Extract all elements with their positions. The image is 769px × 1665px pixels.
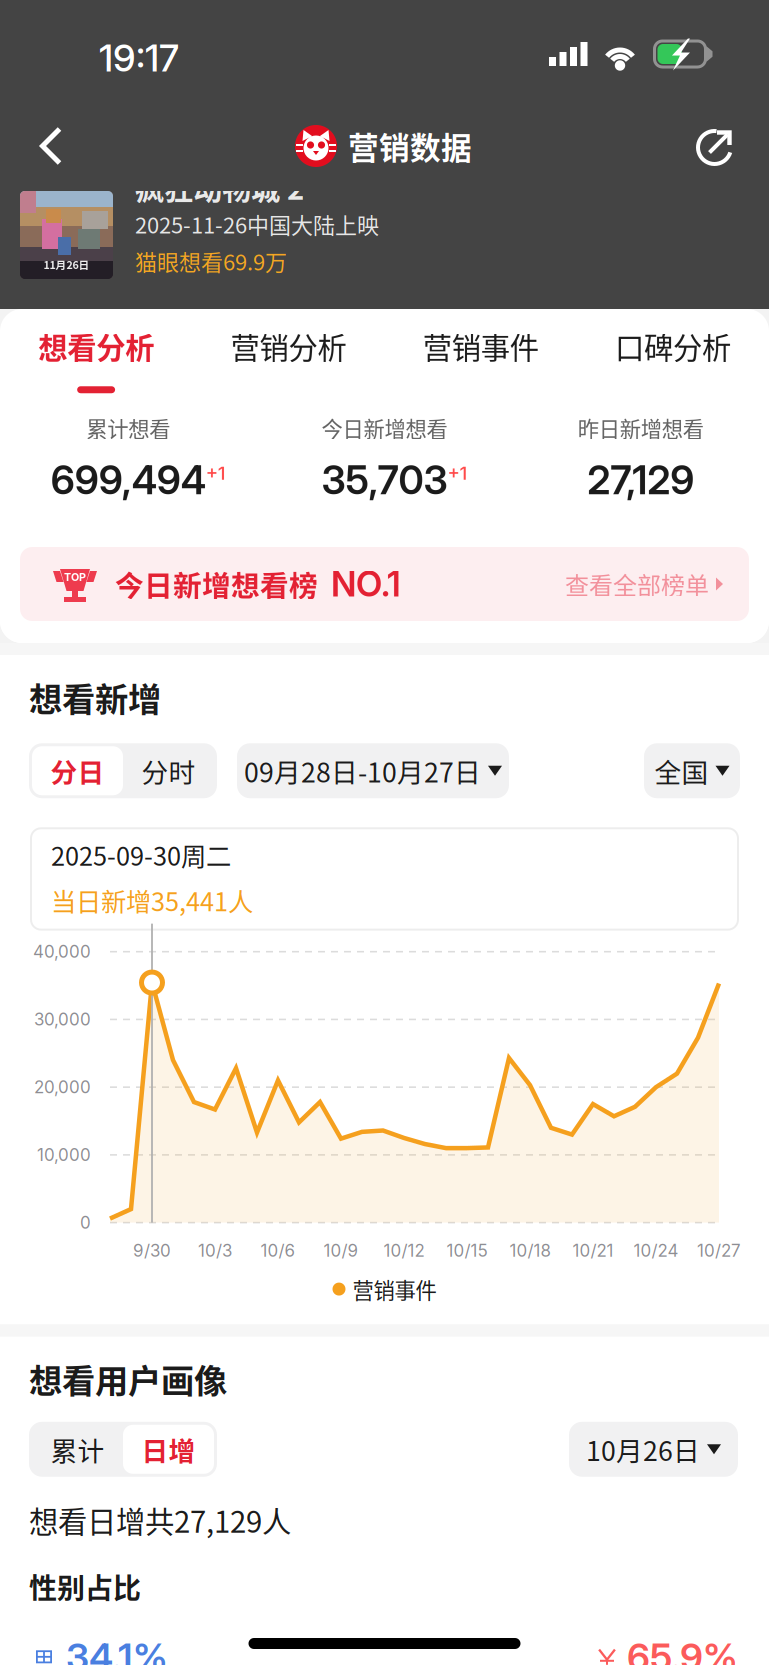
- staticText: 10/6: [260, 1240, 295, 1261]
- staticText: 今日新增想看榜: [115, 563, 318, 605]
- staticText: 10/27: [697, 1240, 741, 1261]
- staticText: 全国: [654, 751, 708, 790]
- staticText: 2025-11-26中国大陆上映: [135, 208, 379, 240]
- staticText: 累计想看: [86, 413, 170, 443]
- staticText: NO.1: [331, 563, 401, 605]
- button[interactable]: 09月28日-10月27日: [237, 743, 509, 798]
- staticText: 10/15: [446, 1240, 487, 1261]
- button[interactable]: 分时: [123, 746, 214, 795]
- staticText: +1: [206, 462, 226, 484]
- button[interactable]: 全国: [644, 743, 740, 798]
- button[interactable]: 分日: [32, 746, 123, 795]
- staticText: 10/24: [633, 1240, 678, 1261]
- staticText: 40,000: [33, 941, 91, 962]
- button[interactable]: 分享: [681, 108, 751, 184]
- staticText: 日增: [141, 1430, 195, 1469]
- staticText: 分时: [141, 751, 195, 790]
- staticText: 10月26日: [586, 1430, 700, 1469]
- staticText: 34.1%: [66, 1634, 168, 1665]
- staticText: 性别占比: [29, 1566, 141, 1607]
- staticText: 想看分析: [38, 325, 154, 367]
- staticText: 分日: [50, 751, 104, 790]
- button[interactable]: 营销分析: [192, 309, 384, 393]
- staticText: 营销分析: [230, 325, 346, 367]
- staticText: 2025-09-30周二: [51, 836, 231, 873]
- staticText: 疯狂动物城 2: [135, 166, 304, 208]
- staticText: 65.9%: [627, 1634, 738, 1665]
- staticText: 10/9: [323, 1240, 358, 1261]
- button[interactable]: 返回: [16, 108, 86, 184]
- staticText: 10,000: [37, 1145, 91, 1165]
- staticText: 累计: [50, 1430, 104, 1469]
- staticText: 想看用户画像: [29, 1354, 227, 1403]
- staticText: 当日新增35,441人: [51, 882, 253, 919]
- staticText: 35,703: [321, 456, 447, 504]
- button[interactable]: 累计: [32, 1425, 123, 1474]
- staticText: 想看日增共27,129人: [29, 1499, 291, 1541]
- staticText: 10/12: [383, 1240, 424, 1261]
- staticText: 想看新增: [29, 673, 161, 721]
- staticText: 11月26日: [43, 257, 89, 272]
- staticText: TOP: [64, 570, 86, 583]
- staticText: 19:17: [99, 35, 179, 81]
- staticText: 30,000: [34, 1009, 91, 1030]
- staticText: 营销事件: [423, 325, 539, 367]
- staticText: 营销事件: [352, 1274, 436, 1304]
- button[interactable]: TOP: [20, 547, 749, 621]
- button[interactable]: 日增: [123, 1425, 214, 1474]
- staticText: 营销数据: [348, 124, 472, 168]
- staticText: 10/21: [572, 1240, 613, 1261]
- staticText: 699,494: [51, 456, 206, 504]
- button[interactable]: 10月26日: [569, 1422, 738, 1477]
- staticText: 口碑分析: [615, 325, 731, 367]
- button[interactable]: 想看分析: [0, 309, 192, 393]
- staticText: 查看全部榜单: [565, 567, 709, 601]
- staticText: 10/18: [509, 1240, 550, 1261]
- staticText: +1: [447, 462, 467, 484]
- staticText: 昨日新增想看: [578, 413, 704, 443]
- staticText: 今日新增想看: [321, 413, 447, 443]
- staticText: 09月28日-10月27日: [244, 751, 481, 790]
- staticText: 9/30: [133, 1240, 171, 1261]
- staticText: 27,129: [587, 456, 694, 504]
- button[interactable]: 营销事件: [384, 309, 577, 393]
- staticText: 20,000: [34, 1077, 91, 1097]
- staticText: 猫眼想看69.9万: [135, 245, 287, 277]
- button[interactable]: 口碑分析: [577, 309, 769, 393]
- staticText: 0: [80, 1212, 91, 1233]
- staticText: 10/3: [198, 1240, 232, 1261]
